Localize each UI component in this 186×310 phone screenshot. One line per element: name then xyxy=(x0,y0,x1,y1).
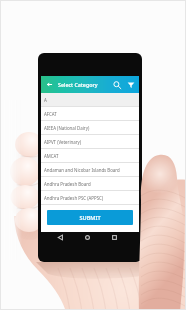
staticText: SUBMIT xyxy=(79,214,101,222)
button[interactable]: A xyxy=(41,93,139,107)
staticText: AIPVT (Veterinary) xyxy=(44,139,82,145)
staticText: AFCAT xyxy=(44,111,57,117)
button[interactable]: AIEEA (National Dairy) xyxy=(41,121,139,135)
button[interactable]: SUBMIT xyxy=(47,210,133,225)
button[interactable]: Home xyxy=(82,232,93,243)
staticText: Andaman and Nicobar Islands Board xyxy=(44,167,120,173)
staticText: Select Category xyxy=(58,81,98,88)
staticText: AMCAT xyxy=(44,153,59,159)
button[interactable]: Search xyxy=(112,80,122,90)
button[interactable]: AMCAT xyxy=(41,149,139,163)
button[interactable]: AFCAT xyxy=(41,107,139,121)
button[interactable]: Back xyxy=(45,80,54,89)
button[interactable]: AIPVT (Veterinary) xyxy=(41,135,139,149)
button[interactable]: Filter xyxy=(126,80,136,90)
button[interactable]: Back xyxy=(55,232,66,243)
button[interactable]: Andaman and Nicobar Islands Board xyxy=(41,163,139,177)
button[interactable]: Andhra Pradesh Board xyxy=(41,177,139,191)
button[interactable]: Andhra Pradesh PSC (APPSC) xyxy=(41,191,139,205)
button[interactable]: Recents xyxy=(109,232,120,243)
staticText: AIEEA (National Dairy) xyxy=(44,125,90,131)
staticText: A xyxy=(44,97,47,103)
staticText: Andhra Pradesh PSC (APPSC) xyxy=(44,195,104,201)
staticText: Andhra Pradesh Board xyxy=(44,181,91,187)
